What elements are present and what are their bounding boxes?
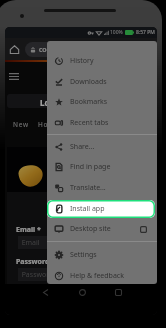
- button[interactable]: Back: [37, 284, 53, 300]
- staticText: Translate...: [70, 183, 106, 193]
- staticText: 8:57 PM: [136, 29, 155, 36]
- staticText: Hot: [38, 120, 52, 129]
- staticText: codes.nz: [39, 45, 68, 55]
- button[interactable]: History: [47, 51, 157, 71]
- button[interactable]: Settings: [47, 245, 157, 265]
- button[interactable]: Install app: [47, 199, 157, 219]
- button[interactable]: Recents: [110, 284, 126, 300]
- button[interactable]: Menu: [6, 68, 22, 84]
- staticText: Password: [16, 257, 50, 267]
- staticText: Email *: [16, 225, 41, 235]
- staticText: Settings: [70, 250, 97, 260]
- button[interactable]: Recent tabs: [47, 113, 157, 133]
- staticText: Desktop site: [70, 224, 111, 234]
- button[interactable]: Downloads: [47, 72, 157, 92]
- staticText: History: [70, 56, 94, 66]
- button[interactable]: New: [13, 120, 29, 129]
- staticText: Downloads: [70, 77, 107, 87]
- button[interactable]: Bookmarks: [47, 92, 157, 112]
- button[interactable]: Help & feedback: [47, 266, 157, 284]
- staticText: 100%: [110, 29, 123, 36]
- button[interactable]: Find in page: [47, 157, 157, 177]
- staticText: Recent tabs: [70, 118, 109, 128]
- staticText: Email: [18, 238, 40, 248]
- button[interactable]: Translate...: [47, 178, 157, 198]
- staticText: New: [13, 120, 29, 129]
- staticText: Share...: [70, 142, 95, 152]
- button[interactable]: Hot: [38, 120, 52, 129]
- staticText: Password: [18, 270, 54, 280]
- staticText: Bookmarks: [70, 97, 108, 107]
- staticText: Install app: [70, 204, 105, 214]
- button[interactable]: Desktop site: [47, 219, 157, 239]
- staticText: Help & feedback: [70, 271, 124, 281]
- staticText: Login: [40, 97, 63, 108]
- staticText: Currency*: [16, 290, 52, 300]
- button[interactable]: Share...: [47, 137, 157, 157]
- button[interactable]: Home: [74, 284, 90, 300]
- staticText: Find in page: [70, 162, 111, 172]
